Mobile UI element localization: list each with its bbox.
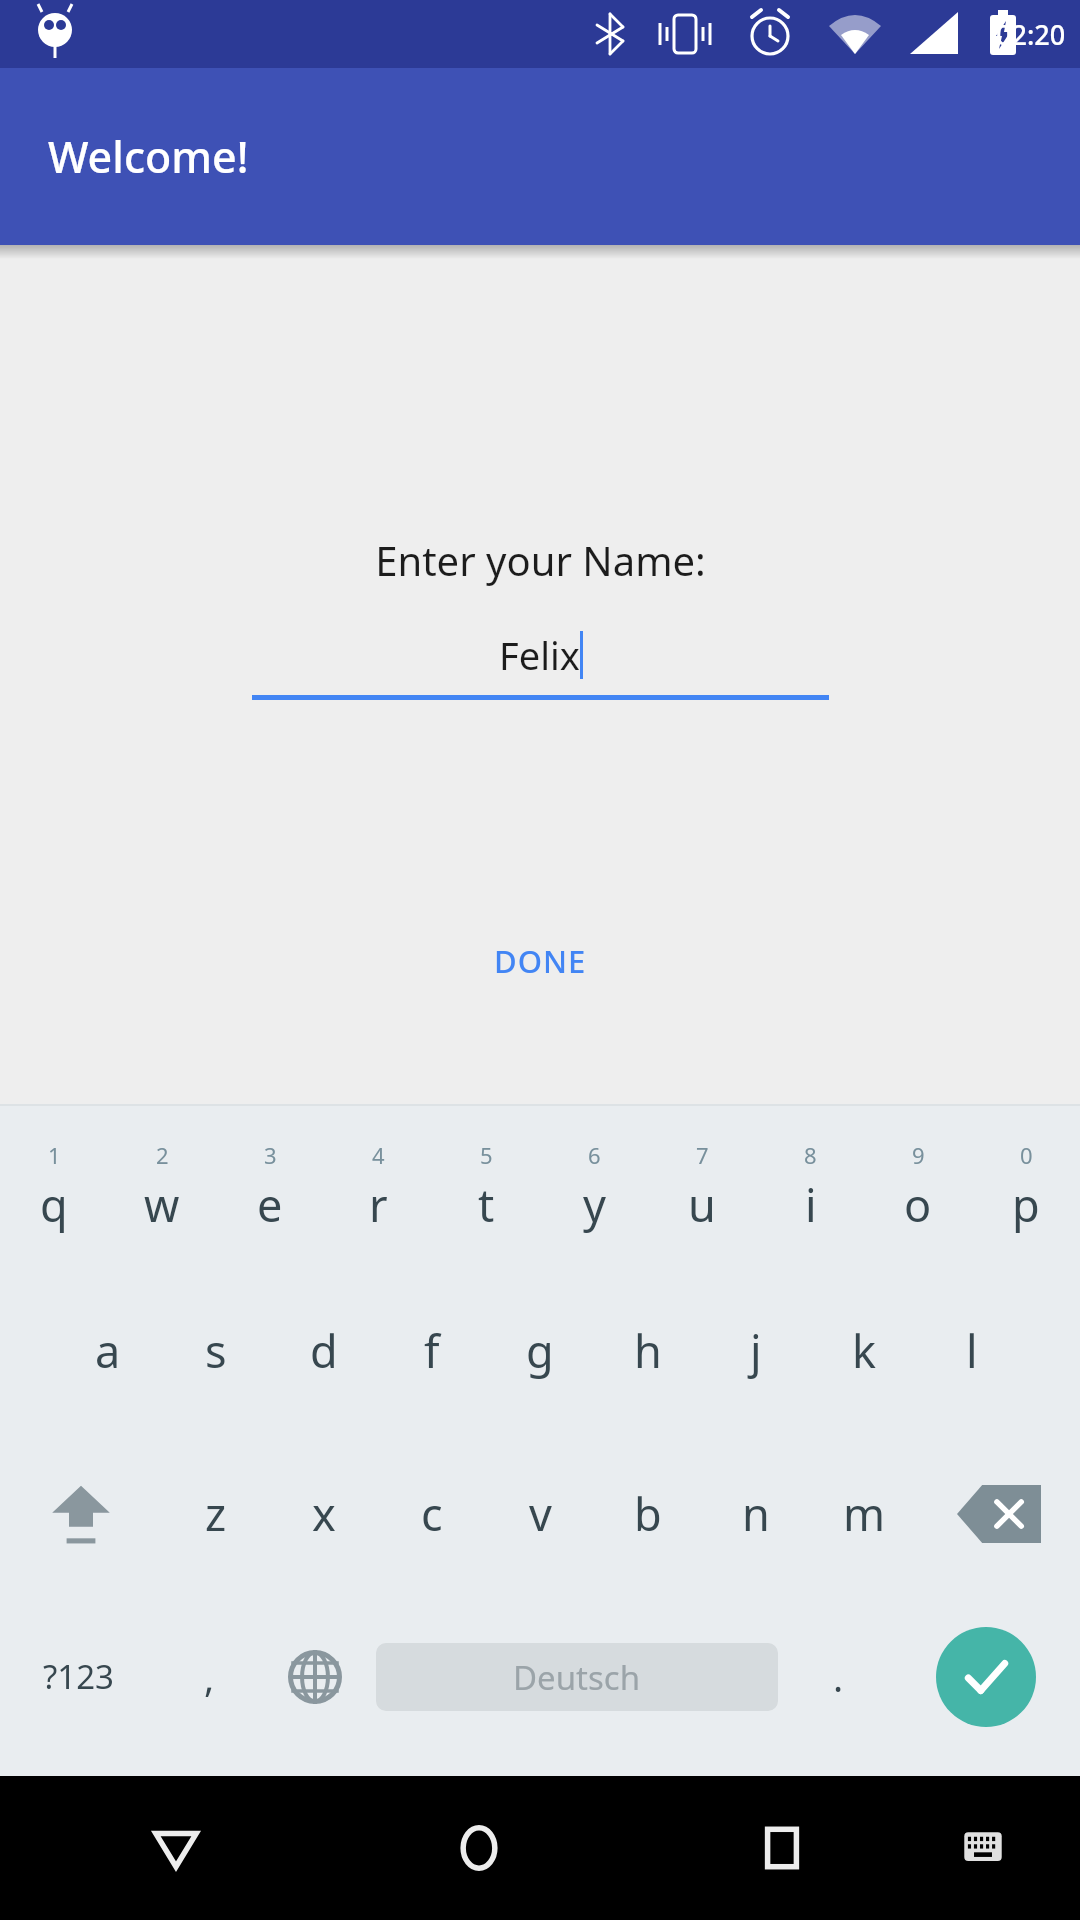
button[interactable]: Change language [262,1595,367,1758]
staticText: , [204,1651,215,1703]
staticText: j [750,1320,762,1381]
button[interactable]: 3 [216,1106,324,1269]
button[interactable]: Deutsch [376,1643,778,1711]
button[interactable]: d [270,1269,378,1432]
staticText: 6 [588,1140,601,1170]
staticText: c [421,1483,443,1544]
button[interactable]: s [162,1269,270,1432]
button[interactable]: 1 [0,1106,108,1269]
button[interactable]: 6 [540,1106,648,1269]
staticText: x [312,1483,336,1544]
staticText: t [478,1174,495,1235]
staticText: o [904,1174,932,1235]
staticText: 8 [804,1140,817,1170]
button[interactable]: Comma [157,1595,262,1758]
button[interactable]: Recents [727,1793,837,1903]
staticText: k [852,1320,877,1381]
staticText: v [529,1483,552,1544]
button[interactable]: Period [786,1595,891,1758]
staticText: Welcome! [48,127,249,186]
button[interactable]: h [594,1269,702,1432]
staticText: . [833,1651,844,1703]
button[interactable]: 0 [972,1106,1080,1269]
button[interactable]: DONE [464,926,617,996]
staticText: h [634,1320,662,1381]
staticText: 0 [1020,1140,1033,1170]
staticText: 1 [48,1140,61,1170]
button[interactable]: Hide keyboard [928,1793,1038,1903]
staticText: 5 [480,1140,493,1170]
staticText: u [688,1174,716,1235]
button[interactable]: 7 [648,1106,756,1269]
staticText: ?123 [43,1654,114,1699]
staticText: i [805,1174,817,1235]
staticText: 02:20 [996,16,1066,53]
staticText: Deutsch [513,1655,641,1700]
button[interactable]: x [270,1432,378,1595]
button[interactable]: 2 [108,1106,216,1269]
button[interactable]: g [486,1269,594,1432]
staticText: 7 [696,1140,709,1170]
button[interactable]: 5 [432,1106,540,1269]
staticText: 4 [372,1140,385,1170]
button[interactable]: Home [424,1793,534,1903]
button[interactable]: Backspace [918,1432,1080,1595]
button[interactable]: 9 [864,1106,972,1269]
button[interactable]: z [162,1432,270,1595]
button[interactable]: b [594,1432,702,1595]
staticText: p [1012,1174,1040,1235]
button[interactable]: m [810,1432,918,1595]
button[interactable]: v [486,1432,594,1595]
button[interactable]: n [702,1432,810,1595]
staticText: n [742,1483,770,1544]
button[interactable]: Shift [0,1432,162,1595]
button[interactable]: k [810,1269,918,1432]
staticText: r [369,1174,388,1235]
staticText: g [526,1320,554,1381]
staticText: Enter your Name: [375,533,706,587]
staticText: a [95,1320,121,1381]
button[interactable]: c [378,1432,486,1595]
staticText: z [205,1483,227,1544]
staticText: DONE [494,940,587,982]
staticText: Felix [499,629,580,681]
staticText: y [583,1174,606,1235]
staticText: q [40,1174,68,1235]
staticText: f [424,1320,440,1381]
button[interactable]: j [702,1269,810,1432]
button[interactable]: f [378,1269,486,1432]
staticText: b [634,1483,662,1544]
button[interactable]: Back [121,1793,231,1903]
button[interactable]: 4 [324,1106,432,1269]
staticText: 2 [156,1140,169,1170]
staticText: l [966,1320,978,1381]
button[interactable]: 8 [756,1106,864,1269]
button[interactable]: l [918,1269,1026,1432]
button[interactable]: Felix [252,629,829,700]
staticText: s [205,1320,227,1381]
button[interactable]: Symbols [0,1595,157,1758]
staticText: w [144,1174,180,1235]
button[interactable]: a [54,1269,162,1432]
staticText: e [257,1174,283,1235]
button[interactable]: Enter [936,1627,1036,1727]
staticText: d [310,1320,338,1381]
staticText: m [843,1483,886,1544]
staticText: 9 [912,1140,925,1170]
staticText: 3 [264,1140,277,1170]
